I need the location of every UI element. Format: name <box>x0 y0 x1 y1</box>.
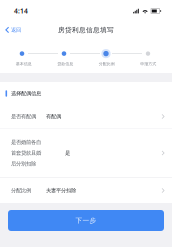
button[interactable]: 分配比例 <box>0 178 172 203</box>
staticText: 选择配偶信息 <box>11 90 41 97</box>
staticText: 下一步 <box>75 216 96 225</box>
staticText: 分配比例 <box>99 61 115 66</box>
staticText: 是 <box>65 150 70 156</box>
staticText: 房贷利息信息填写 <box>58 26 114 34</box>
button[interactable]: 是否婚前各自首套贷款且婚后分别扣除 <box>0 128 172 177</box>
button[interactable]: 是否有配偶 <box>0 105 172 128</box>
staticText: 夫妻平分扣除 <box>46 187 76 194</box>
staticText: 申报方式 <box>140 61 156 66</box>
staticText: 是否婚前各自首套贷款且婚后分别扣除 <box>11 139 41 167</box>
button[interactable]: 返回 <box>0 21 25 38</box>
button[interactable]: 下一步 <box>8 210 164 231</box>
staticText: 是否有配偶 <box>11 113 36 120</box>
staticText: 4:14 <box>14 7 28 15</box>
staticText: 返回 <box>11 27 21 33</box>
staticText: 有配偶 <box>46 113 61 120</box>
staticText: 分配比例 <box>11 187 31 194</box>
staticText: 基本信息 <box>16 61 32 66</box>
staticText: 贷款信息 <box>57 61 73 66</box>
